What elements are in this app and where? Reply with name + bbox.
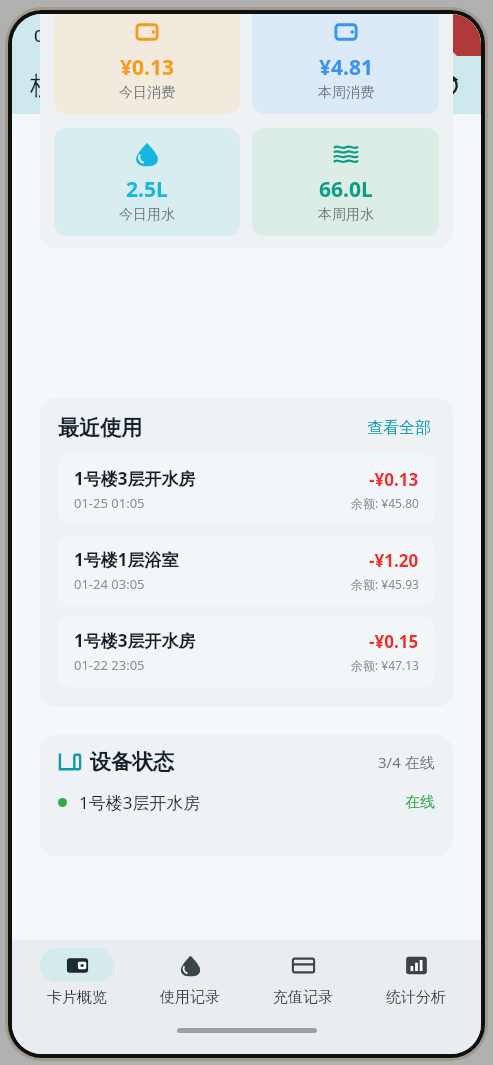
staticText: 今日用水 (119, 206, 175, 224)
staticText: 查看全部 (367, 418, 431, 438)
staticText: 余额: ¥47.13 (351, 657, 419, 673)
staticText: 1号楼3层开水房 (74, 629, 196, 652)
staticText: 统计分析 (386, 988, 446, 1007)
staticText: 1号楼3层开水房 (79, 791, 201, 814)
button[interactable]: 1号楼3层开水房 (58, 791, 435, 814)
button[interactable]: ¥4.81 (252, 14, 439, 114)
staticText: 最近使用 (58, 415, 142, 441)
button[interactable]: 1号楼3层开水房 (58, 454, 435, 525)
staticText: -¥0.15 (369, 630, 419, 653)
button[interactable]: 使用记录 (142, 948, 238, 1007)
staticText: 2.5L (126, 175, 168, 204)
staticText: 设备状态 (90, 749, 174, 775)
staticText: ¥4.81 (319, 53, 373, 82)
staticText: 09:06 (34, 24, 78, 47)
button[interactable]: Refresh (429, 67, 465, 103)
staticText: 66.0L (319, 175, 373, 204)
button[interactable]: 卡片概览 (29, 948, 125, 1007)
staticText: ¥0.13 (120, 53, 174, 82)
staticText: 校园热水卡记录 (30, 70, 205, 101)
staticText: 100 (446, 30, 462, 42)
staticText: 今日消费 (119, 84, 175, 102)
staticText: 本周消费 (318, 84, 374, 102)
button[interactable]: 1号楼3层开水房 (58, 616, 435, 687)
button[interactable]: 查看全部 (363, 414, 435, 442)
staticText: 在线 (405, 793, 435, 812)
button[interactable]: 充值记录 (255, 948, 351, 1007)
staticText: 1号楼3层开水房 (74, 467, 196, 490)
button[interactable]: 1号楼1层浴室 (58, 535, 435, 606)
staticText: 本周用水 (318, 206, 374, 224)
staticText: -¥0.13 (369, 468, 419, 491)
staticText: 卡片概览 (47, 988, 107, 1007)
staticText: 01-25 01:05 (74, 494, 145, 512)
button[interactable]: 2.5L (54, 128, 240, 236)
staticText: 01-22 23:05 (74, 656, 145, 674)
staticText: 使用记录 (160, 988, 220, 1007)
staticText: 1号楼1层浴室 (74, 548, 179, 571)
staticText: 余额: ¥45.93 (351, 576, 419, 592)
button[interactable]: ¥0.13 (54, 14, 240, 114)
staticText: 01-24 03:05 (74, 575, 145, 593)
staticText: 余额: ¥45.80 (351, 495, 419, 511)
staticText: 3/4 在线 (378, 752, 435, 772)
button[interactable]: 统计分析 (368, 948, 464, 1007)
staticText: 充值记录 (273, 988, 333, 1007)
staticText: -¥1.20 (369, 549, 419, 572)
button[interactable]: 66.0L (252, 128, 439, 236)
